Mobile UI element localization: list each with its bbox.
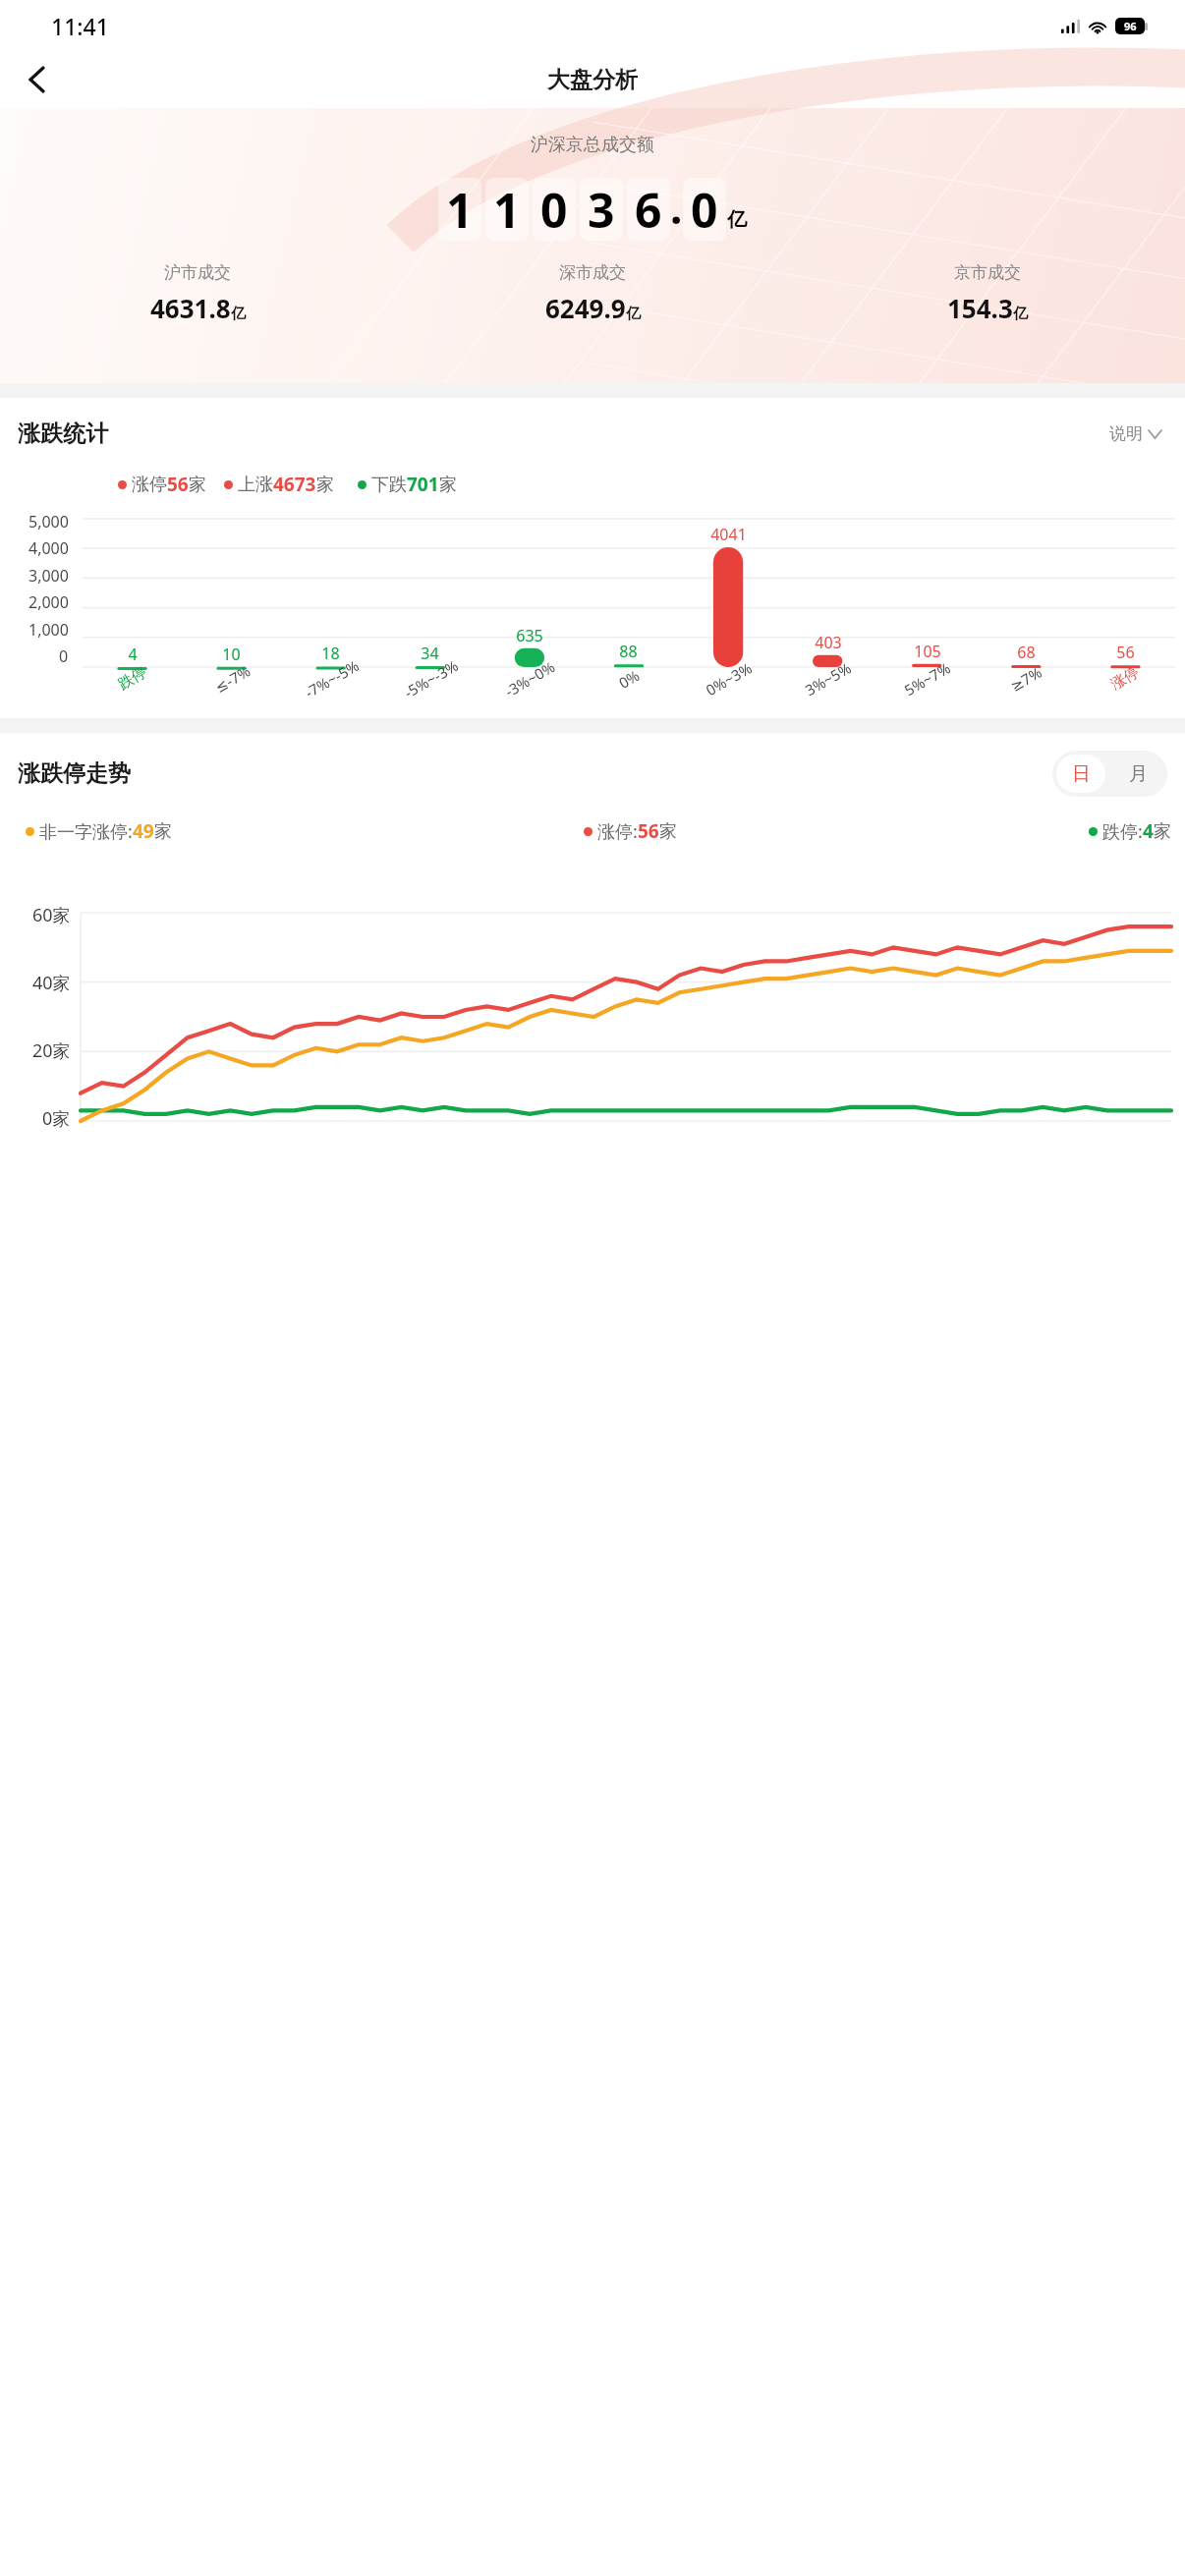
staticText: 6249.9 <box>545 291 626 325</box>
staticText: 家 <box>659 820 677 843</box>
staticText: 6 <box>635 178 662 241</box>
staticText: 60家 <box>32 903 71 927</box>
button[interactable]: Back <box>14 57 59 102</box>
staticText: 日 <box>1072 762 1091 786</box>
staticText: 0 <box>691 178 718 241</box>
staticText: 5,000 <box>28 511 69 532</box>
staticText: 11:41 <box>51 11 109 41</box>
staticText: 4 <box>1143 818 1154 844</box>
staticText: 家 <box>1154 820 1171 843</box>
staticText: 4,000 <box>28 537 69 559</box>
staticText: 亿 <box>1013 305 1028 323</box>
staticText: 沪深京总成交额 <box>531 134 654 156</box>
staticText: 403 <box>815 632 842 653</box>
staticText: 1 <box>493 178 521 241</box>
staticText: 家 <box>189 474 206 496</box>
staticText: 154.3 <box>947 291 1013 325</box>
staticText: 3 <box>588 178 615 241</box>
staticText: 40家 <box>32 971 71 995</box>
staticText: 4631.8 <box>150 291 231 325</box>
staticText: 月 <box>1129 762 1148 786</box>
staticText: 涨停 <box>132 474 167 496</box>
staticText: . <box>670 178 683 237</box>
staticText: 20家 <box>32 1038 71 1063</box>
staticText: 4 <box>128 644 138 665</box>
staticText: 下跌 <box>371 474 407 496</box>
staticText: 56 <box>638 818 659 844</box>
staticText: 3,000 <box>28 565 69 587</box>
button[interactable]: 月 <box>1109 751 1167 797</box>
staticText: 3%~5% <box>801 658 854 700</box>
staticText: 1 <box>446 178 474 241</box>
staticText: 0%~3% <box>702 658 755 700</box>
staticText: 亿 <box>626 305 641 323</box>
staticText: 701 <box>407 472 439 497</box>
staticText: 56 <box>1116 642 1135 663</box>
staticText: -3%~0% <box>501 657 558 701</box>
staticText: 亿 <box>231 305 246 323</box>
staticText: 68 <box>1017 642 1036 663</box>
staticText: 56 <box>167 472 189 497</box>
staticText: 18 <box>321 643 340 664</box>
staticText: 49 <box>133 818 154 844</box>
staticText: 上涨 <box>238 474 273 496</box>
staticText: 跌停: <box>1102 819 1143 844</box>
staticText: 京市成交 <box>954 262 1021 283</box>
staticText: ≤-7% <box>211 661 254 697</box>
staticText: 沪市成交 <box>164 262 231 283</box>
staticText: 0 <box>59 645 69 667</box>
staticText: 深市成交 <box>559 262 626 283</box>
staticText: 4041 <box>710 524 747 545</box>
staticText: 亿 <box>727 207 747 232</box>
staticText: 4673 <box>273 472 316 497</box>
staticText: 0 <box>540 178 568 241</box>
staticText: 涨停: <box>597 819 638 844</box>
button[interactable]: 日 <box>1056 755 1105 793</box>
staticText: -7%~-5% <box>301 655 362 702</box>
staticText: ≥7% <box>1006 662 1045 696</box>
staticText: 说明 <box>1109 423 1143 444</box>
staticText: 涨跌停走势 <box>18 759 131 788</box>
staticText: 涨停 <box>1108 663 1143 694</box>
staticText: 2,000 <box>28 591 69 613</box>
staticText: 大盘分析 <box>547 66 638 94</box>
staticText: 家 <box>154 820 172 843</box>
staticText: 0% <box>615 665 643 693</box>
staticText: 0家 <box>42 1106 71 1131</box>
button[interactable]: 说明 <box>1103 418 1167 450</box>
staticText: 家 <box>439 474 457 496</box>
staticText: 1,000 <box>28 619 69 641</box>
staticText: 5%~7% <box>900 658 954 700</box>
staticText: 105 <box>914 641 941 662</box>
staticText: 96 <box>1124 19 1137 33</box>
staticText: 非一字涨停: <box>39 819 133 844</box>
staticText: 34 <box>421 643 439 664</box>
staticText: 88 <box>619 641 638 662</box>
staticText: -5%~-3% <box>400 655 462 702</box>
staticText: 10 <box>222 644 241 665</box>
staticText: 家 <box>316 474 334 496</box>
staticText: 涨跌统计 <box>18 420 108 448</box>
staticText: 635 <box>516 625 543 646</box>
staticText: 跌停 <box>115 663 150 694</box>
